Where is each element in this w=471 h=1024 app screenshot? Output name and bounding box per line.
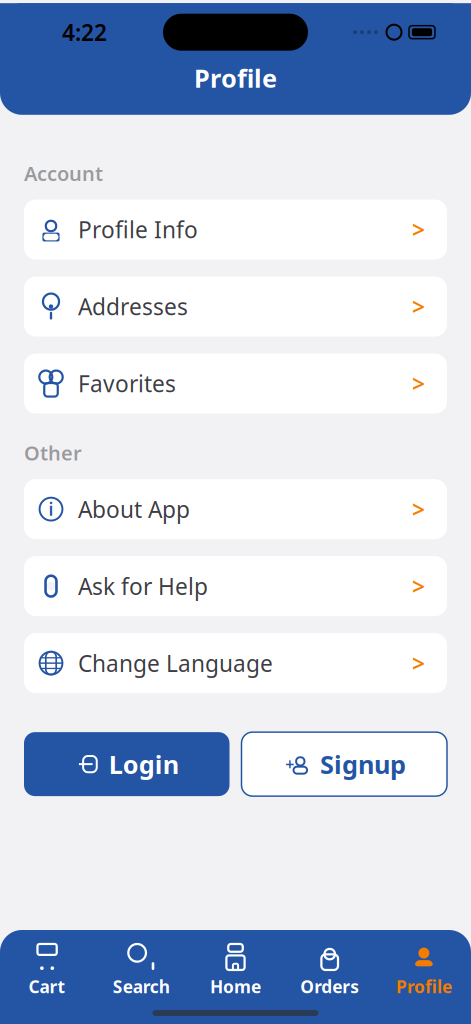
button[interactable]: Change Language xyxy=(24,633,447,693)
staticText: Other xyxy=(24,440,82,466)
button[interactable]: Login xyxy=(24,732,229,796)
button[interactable]: Profile Info xyxy=(24,200,447,260)
staticText: > xyxy=(412,291,425,322)
button[interactable]: Search xyxy=(94,930,188,1004)
staticText: > xyxy=(412,494,425,524)
staticText: + xyxy=(285,753,294,775)
staticText: > xyxy=(412,368,425,399)
staticText: Orders xyxy=(300,975,359,998)
staticText: Ask for Help xyxy=(78,571,208,601)
button[interactable]: Addresses xyxy=(24,277,447,337)
button[interactable]: Cart xyxy=(0,930,94,1004)
button[interactable]: i xyxy=(24,479,447,539)
staticText: Login xyxy=(109,747,179,781)
button[interactable]: Ask for Help xyxy=(24,556,447,616)
staticText: Home xyxy=(210,975,261,998)
staticText: > xyxy=(412,571,425,601)
staticText: i xyxy=(48,498,53,521)
button[interactable]: Profile xyxy=(377,930,471,1004)
button[interactable]: Home xyxy=(188,930,283,1004)
staticText: Signup xyxy=(320,747,406,781)
staticText: About App xyxy=(78,494,190,524)
staticText: Search xyxy=(113,975,170,998)
button[interactable]: Orders xyxy=(283,930,377,1004)
staticText: Change Language xyxy=(78,648,273,678)
staticText: > xyxy=(412,648,425,678)
staticText: Account xyxy=(24,160,103,187)
staticText: > xyxy=(412,214,425,245)
staticText: Profile xyxy=(396,975,452,998)
staticText: Favorites xyxy=(78,368,176,399)
staticText: Profile xyxy=(194,61,277,95)
button[interactable]: + xyxy=(241,732,447,796)
staticText: Addresses xyxy=(78,291,188,322)
staticText: Cart xyxy=(29,975,66,998)
button[interactable]: Favorites xyxy=(24,354,447,414)
staticText: 4:22 xyxy=(62,17,107,47)
staticText: Profile Info xyxy=(78,214,198,245)
